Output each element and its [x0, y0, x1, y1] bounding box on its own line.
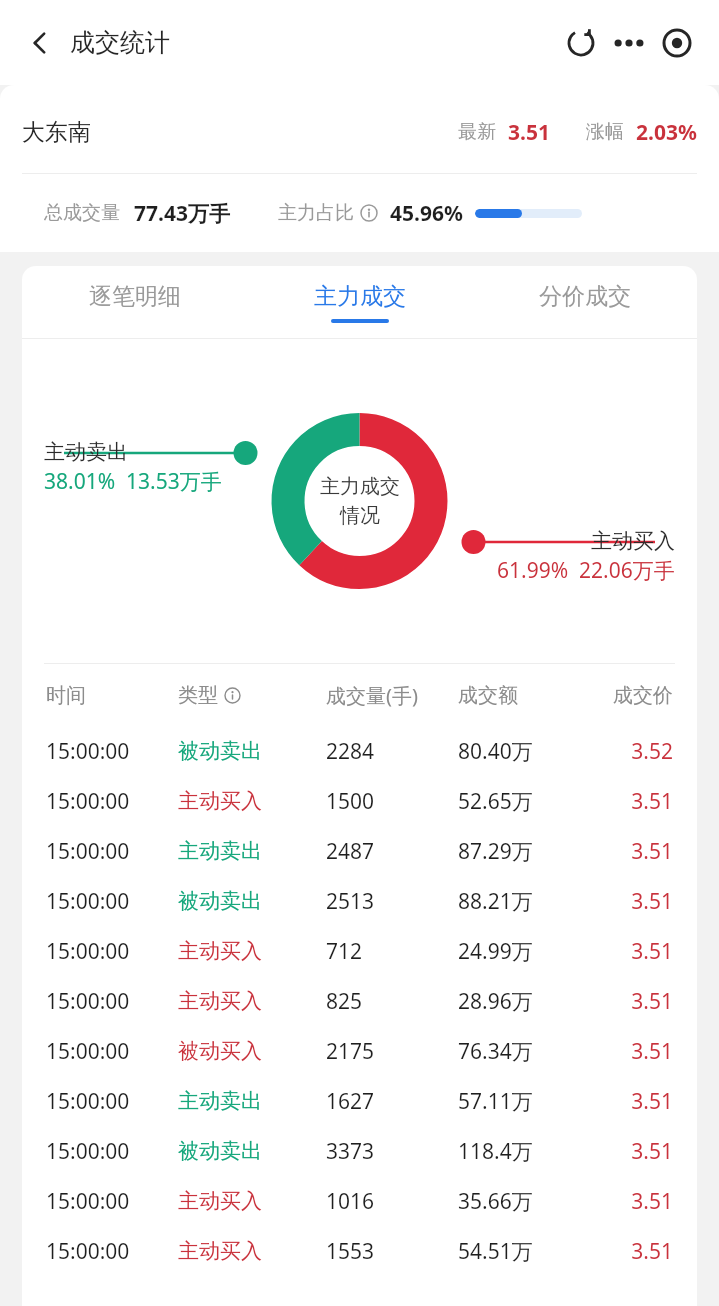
staticText: 712: [326, 937, 458, 966]
staticText: 2513: [326, 887, 458, 916]
staticText: 主动卖出: [178, 838, 326, 864]
staticText: 主动买入: [591, 528, 675, 554]
staticText: 1627: [326, 1087, 458, 1116]
staticText: 主动买入: [178, 988, 326, 1014]
staticText: 最新: [458, 120, 496, 144]
staticText: 88.21万: [458, 887, 595, 916]
staticText: 3.51: [595, 1087, 673, 1116]
staticText: 28.96万: [458, 987, 595, 1016]
staticText: 主动卖出: [44, 439, 128, 465]
staticText: 3.51: [595, 887, 673, 916]
staticText: 成交量(手): [326, 682, 458, 709]
staticText: 118.4万: [458, 1137, 595, 1166]
button[interactable]: Refresh: [557, 19, 605, 67]
staticText: 38.01% 13.53万手: [44, 467, 222, 496]
staticText: 总成交量: [44, 201, 120, 225]
staticText: 15:00:00: [46, 1087, 178, 1116]
staticText: 3.51: [595, 1187, 673, 1216]
staticText: 主力成交: [314, 282, 406, 311]
staticText: 15:00:00: [46, 737, 178, 766]
staticText: 3.51: [595, 1137, 673, 1166]
staticText: 45.96%: [390, 199, 463, 228]
staticText: 3373: [326, 1137, 458, 1166]
staticText: 77.43万手: [134, 199, 230, 228]
staticText: 3.51: [595, 787, 673, 816]
staticText: 主动买入: [178, 788, 326, 814]
button[interactable]: 15:00:00: [22, 1026, 697, 1076]
button[interactable]: 15:00:00: [22, 976, 697, 1026]
staticText: 主动买入: [178, 938, 326, 964]
staticText: 3.51: [595, 937, 673, 966]
staticText: 类型: [178, 683, 218, 708]
button[interactable]: 15:00:00: [22, 1126, 697, 1176]
button[interactable]: 15:00:00: [22, 1226, 697, 1276]
staticText: 15:00:00: [46, 1237, 178, 1266]
staticText: 被动卖出: [178, 738, 326, 764]
staticText: 76.34万: [458, 1037, 595, 1066]
button[interactable]: 主力成交: [247, 266, 472, 338]
staticText: 3.51: [595, 1237, 673, 1266]
staticText: 1500: [326, 787, 458, 816]
staticText: 主动卖出: [178, 1088, 326, 1114]
staticText: 2284: [326, 737, 458, 766]
staticText: 15:00:00: [46, 1187, 178, 1216]
staticText: 主力占比: [278, 201, 354, 225]
staticText: 87.29万: [458, 837, 595, 866]
staticText: 825: [326, 987, 458, 1016]
staticText: 大东南: [22, 118, 91, 147]
button[interactable]: 15:00:00: [22, 776, 697, 826]
button[interactable]: 15:00:00: [22, 926, 697, 976]
staticText: 2487: [326, 837, 458, 866]
staticText: 涨幅: [586, 120, 624, 144]
button[interactable]: More options: [605, 19, 653, 67]
staticText: 3.52: [595, 737, 673, 766]
button[interactable]: 15:00:00: [22, 876, 697, 926]
staticText: 54.51万: [458, 1237, 595, 1266]
staticText: 主动买入: [178, 1238, 326, 1264]
staticText: 15:00:00: [46, 987, 178, 1016]
staticText: 主力成交: [320, 474, 400, 499]
staticText: 15:00:00: [46, 887, 178, 916]
staticText: 80.40万: [458, 737, 595, 766]
staticText: 成交额: [458, 683, 595, 708]
staticText: 15:00:00: [46, 787, 178, 816]
staticText: 被动买入: [178, 1038, 326, 1064]
staticText: 分价成交: [539, 282, 631, 311]
staticText: 15:00:00: [46, 937, 178, 966]
staticText: 成交统计: [70, 27, 170, 58]
staticText: 1016: [326, 1187, 458, 1216]
staticText: 逐笔明细: [89, 282, 181, 311]
staticText: 15:00:00: [46, 837, 178, 866]
staticText: 52.65万: [458, 787, 595, 816]
staticText: 时间: [46, 683, 178, 708]
staticText: 1553: [326, 1237, 458, 1266]
staticText: 35.66万: [458, 1187, 595, 1216]
button[interactable]: 15:00:00: [22, 826, 697, 876]
staticText: 成交价: [595, 683, 673, 708]
staticText: 情况: [340, 503, 380, 528]
staticText: 57.11万: [458, 1087, 595, 1116]
staticText: 3.51: [508, 118, 550, 147]
staticText: 3.51: [595, 1037, 673, 1066]
staticText: 2.03%: [636, 118, 697, 147]
button[interactable]: Record: [653, 19, 701, 67]
staticText: 24.99万: [458, 937, 595, 966]
button[interactable]: 分价成交: [472, 266, 697, 338]
staticText: 15:00:00: [46, 1137, 178, 1166]
button[interactable]: Back: [18, 21, 62, 65]
button[interactable]: 逐笔明细: [22, 266, 247, 338]
staticText: 3.51: [595, 837, 673, 866]
staticText: 15:00:00: [46, 1037, 178, 1066]
button[interactable]: 15:00:00: [22, 726, 697, 776]
button[interactable]: 15:00:00: [22, 1176, 697, 1226]
staticText: 被动卖出: [178, 1138, 326, 1164]
button[interactable]: 15:00:00: [22, 1076, 697, 1126]
staticText: 被动卖出: [178, 888, 326, 914]
staticText: 3.51: [595, 987, 673, 1016]
staticText: 主动买入: [178, 1188, 326, 1214]
staticText: 2175: [326, 1037, 458, 1066]
staticText: 61.99% 22.06万手: [497, 556, 675, 585]
